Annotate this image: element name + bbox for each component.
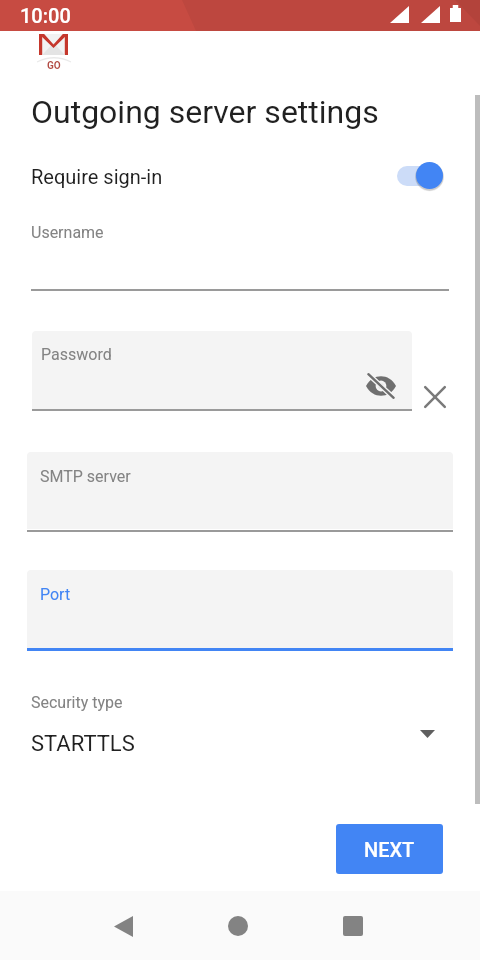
staticText: NEXT <box>364 838 415 861</box>
staticText: SMTP server <box>40 467 131 486</box>
button[interactable]: Security type <box>0 682 480 764</box>
button[interactable] <box>31 248 449 290</box>
button[interactable]: Back <box>95 898 151 954</box>
staticText: Outgoing server settings <box>31 93 379 131</box>
staticText: GO <box>47 60 61 72</box>
staticText: Require sign-in <box>31 165 163 188</box>
staticText: Port <box>40 585 71 604</box>
button[interactable]: NEXT <box>336 824 443 874</box>
button[interactable]: Password <box>32 331 412 409</box>
button[interactable]: Port <box>27 570 453 648</box>
staticText: Security type <box>31 693 123 712</box>
staticText: Username <box>31 223 104 242</box>
button[interactable]: Hide password <box>363 368 399 404</box>
staticText: Password <box>41 345 112 364</box>
button[interactable]: Clear password <box>418 380 451 413</box>
button[interactable]: Require sign-in <box>0 150 480 200</box>
button[interactable]: Recent apps <box>325 898 381 954</box>
button[interactable]: Home <box>210 898 266 954</box>
staticText: 10:00 <box>20 4 71 27</box>
button[interactable]: Require sign-in toggle <box>390 157 452 193</box>
staticText: STARTTLS <box>31 731 135 757</box>
button[interactable]: SMTP server <box>27 452 453 529</box>
